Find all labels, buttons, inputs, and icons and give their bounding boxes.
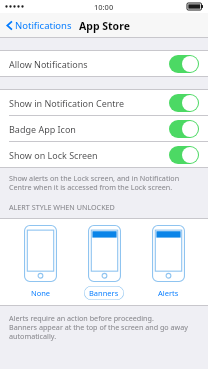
button[interactable]: Toggle on — [169, 146, 199, 164]
staticText: None — [31, 288, 51, 298]
button[interactable]: Banners — [80, 225, 128, 300]
button[interactable]: None — [20, 225, 61, 300]
button[interactable]: Badge App Icon — [0, 116, 208, 141]
staticText: Notifications — [15, 19, 72, 32]
staticText: 10:00 — [94, 2, 114, 12]
button[interactable]: Toggle on — [169, 55, 199, 73]
button[interactable]: Show in Notification Centre — [0, 90, 208, 115]
button[interactable]: Toggle on — [169, 120, 199, 138]
staticText: App Store — [79, 19, 130, 33]
staticText: Alerts require an action before proceedi… — [9, 313, 199, 342]
staticText: ALERT STYLE WHEN UNLOCKED — [9, 202, 115, 212]
button[interactable]: Notifications — [4, 16, 74, 35]
staticText: Badge App Icon — [9, 123, 76, 135]
button[interactable]: Allow Notifications — [0, 51, 208, 76]
staticText: Show on Lock Screen — [9, 149, 98, 161]
staticText: Banners — [89, 288, 119, 298]
staticText: Show in Notification Centre — [9, 97, 125, 109]
button[interactable]: Show on Lock Screen — [0, 142, 208, 167]
button[interactable]: Toggle on — [169, 94, 199, 112]
staticText: Allow Notifications — [9, 58, 88, 70]
staticText: Show alerts on the Lock screen, and in N… — [9, 173, 199, 193]
button[interactable]: Alerts — [148, 225, 189, 300]
staticText: Alerts — [158, 288, 179, 298]
